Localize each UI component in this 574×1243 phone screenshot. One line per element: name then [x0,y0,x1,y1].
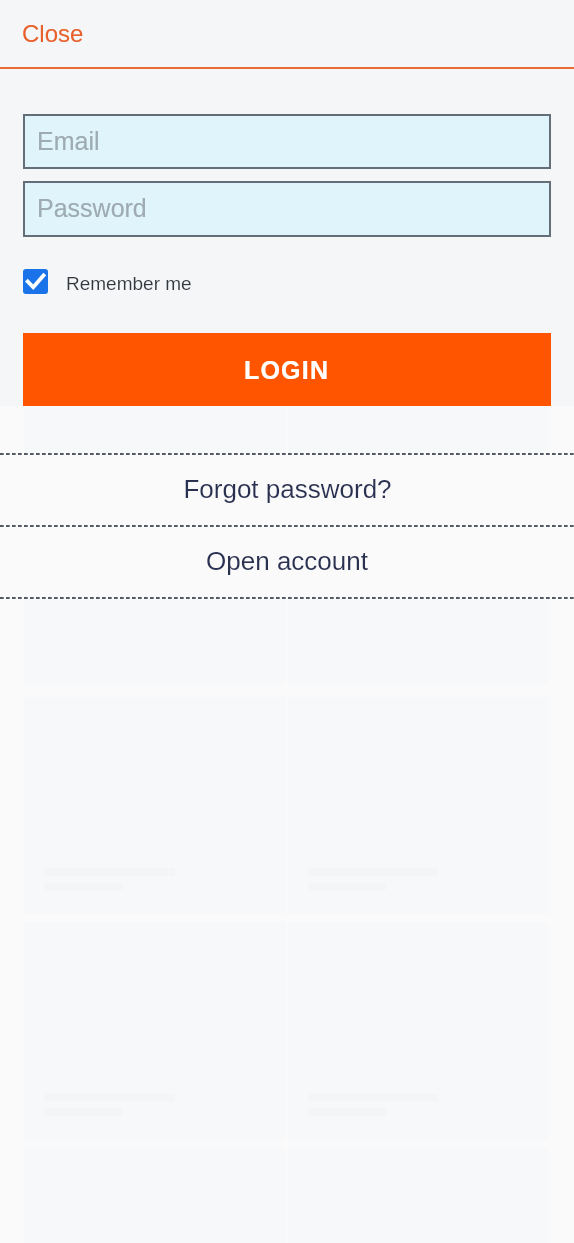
button[interactable]: Open account [0,527,574,597]
staticText: Password [37,194,147,222]
staticText: LOGIN [244,356,330,384]
staticText: Remember me [66,273,192,294]
button[interactable]: Close [0,10,102,57]
staticText: Open account [206,546,368,575]
button[interactable]: Forgot password? [0,455,574,525]
staticText: Close [22,20,84,47]
button[interactable]: Password [23,181,551,237]
staticText: Forgot password? [183,474,392,503]
staticText: Email [37,127,100,155]
button[interactable]: LOGIN [23,333,551,406]
button[interactable]: Remember me [23,261,206,302]
button[interactable]: Email [23,114,551,169]
